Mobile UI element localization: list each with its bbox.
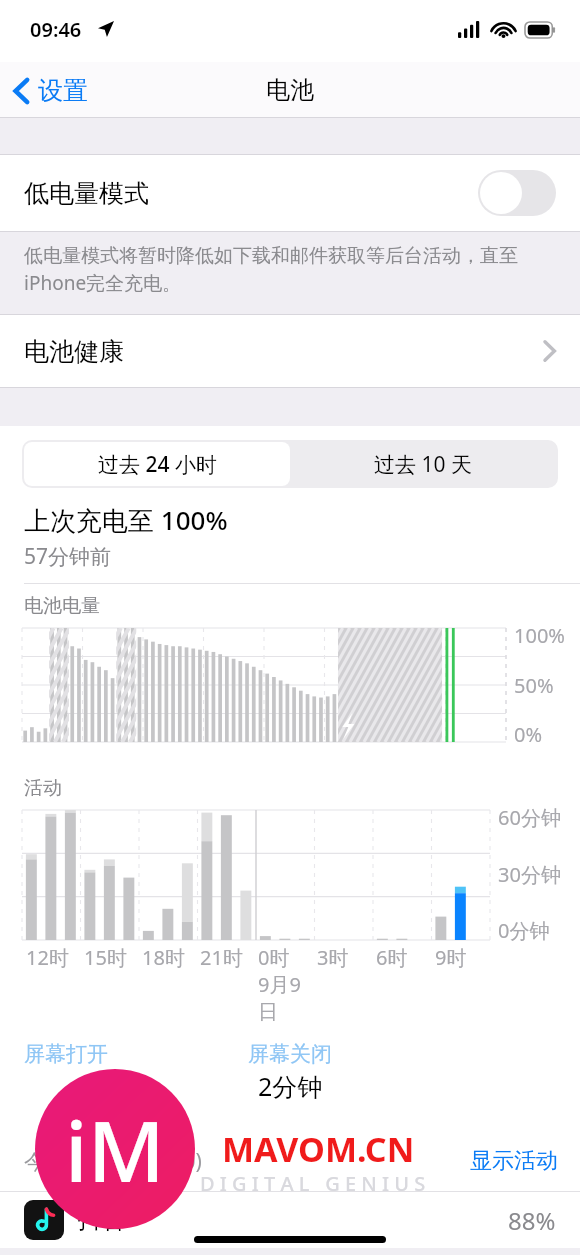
button[interactable]: 电池健康 <box>0 315 580 387</box>
staticText: 100% <box>514 622 565 649</box>
staticText: 电池电量 <box>24 594 100 618</box>
staticText: 过去 24 小时 <box>98 450 217 479</box>
staticText: 上次充电至 100% <box>24 502 228 538</box>
staticText: 低电量模式将暂时降低如下载和邮件获取等后台活动，直至 iPhone完全充电。 <box>24 244 518 296</box>
staticText: 50% <box>514 672 554 699</box>
staticText: 15时 <box>84 944 127 971</box>
staticText: 0时 <box>258 944 290 971</box>
staticText: 12时 <box>26 944 69 971</box>
staticText: 6时 <box>376 944 408 971</box>
button[interactable]: 显示活动 <box>448 1143 580 1179</box>
button[interactable]: 设置 <box>0 69 102 112</box>
staticText: 18时 <box>142 944 185 971</box>
staticText: MAVOM.CN <box>222 1126 415 1172</box>
button[interactable]: 过去 24 小时 <box>24 442 290 486</box>
staticText: 过去 10 天 <box>374 450 472 479</box>
button[interactable]: 低电量模式 <box>0 155 580 231</box>
button[interactable]: 抖音 <box>0 1192 580 1248</box>
staticText: 21时 <box>200 944 243 971</box>
button[interactable]: 低电量模式开关 <box>478 170 556 216</box>
staticText: 设置 <box>38 75 88 106</box>
button[interactable]: 过去 10 天 <box>290 442 556 486</box>
staticText: 60分钟 <box>498 804 561 831</box>
staticText: 今天 (09:00–10:00) <box>24 1147 202 1176</box>
staticText: 30分钟 <box>498 861 561 888</box>
staticText: 抖音 <box>78 1205 126 1235</box>
staticText: 09:46 <box>30 16 82 43</box>
staticText: 电池健康 <box>24 336 124 367</box>
staticText: 9时 <box>435 944 467 971</box>
staticText: 57分钟前 <box>24 542 112 571</box>
staticText: 低电量模式 <box>24 178 149 209</box>
staticText: 2分钟 <box>258 1069 323 1103</box>
staticText: 显示活动 <box>470 1147 558 1175</box>
staticText: iM <box>65 1092 165 1206</box>
staticText: D I G I T A L G E N I U S <box>200 1170 426 1197</box>
staticText: 88% <box>508 1204 556 1237</box>
staticText: 0% <box>514 721 543 748</box>
staticText: 9月9日 <box>258 971 313 1025</box>
staticText: 3时 <box>317 944 349 971</box>
staticText: 0分钟 <box>498 917 550 944</box>
staticText: 屏幕打开 <box>24 1041 108 1067</box>
staticText: 电池 <box>266 75 314 105</box>
staticText: 活动 <box>24 776 62 800</box>
staticText: 屏幕关闭 <box>248 1041 332 1067</box>
